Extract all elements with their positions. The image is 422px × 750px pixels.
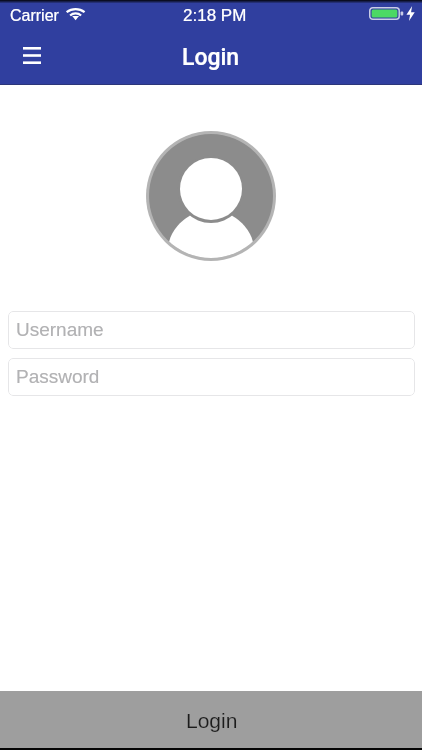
staticText: Login — [182, 44, 240, 71]
button[interactable]: Username — [8, 311, 415, 349]
staticText: 2:18 PM — [183, 6, 247, 25]
staticText: Username — [16, 319, 104, 340]
button[interactable]: Password — [8, 358, 415, 396]
button[interactable]: Open navigation menu — [10, 35, 54, 75]
staticText: Password — [16, 366, 100, 387]
staticText: Login — [186, 709, 238, 732]
staticText: Carrier — [10, 7, 59, 25]
button[interactable]: Login — [0, 691, 422, 748]
